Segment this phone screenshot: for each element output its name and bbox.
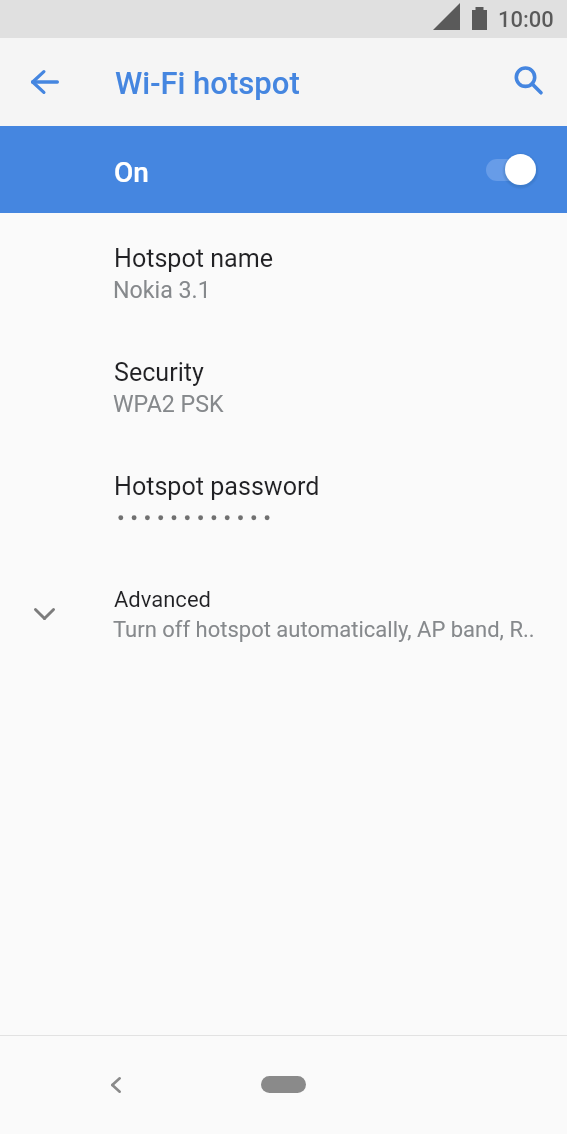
staticText: Nokia 3.1 <box>113 276 211 303</box>
button[interactable]: Search <box>500 53 556 109</box>
staticText: Turn off hotspot automatically, AP band,… <box>113 617 535 643</box>
staticText: 10:00 <box>498 7 554 33</box>
staticText: Security <box>114 358 204 387</box>
staticText: Hotspot name <box>114 244 274 273</box>
button[interactable]: On <box>0 126 567 213</box>
staticText: Wi-Fi hotspot <box>115 65 300 101</box>
staticText: Hotspot password <box>114 472 320 501</box>
button[interactable]: Security <box>0 337 567 447</box>
button[interactable]: Home <box>261 1076 306 1093</box>
button[interactable]: Hotspot password <box>0 451 567 556</box>
staticText: WPA2 PSK <box>113 390 224 417</box>
button[interactable]: Back <box>16 53 73 110</box>
staticText: Advanced <box>114 587 211 613</box>
staticText: On <box>114 156 149 189</box>
button[interactable]: Back <box>88 1057 144 1113</box>
button[interactable]: Advanced <box>0 566 567 658</box>
button[interactable]: Hotspot name <box>0 224 567 333</box>
